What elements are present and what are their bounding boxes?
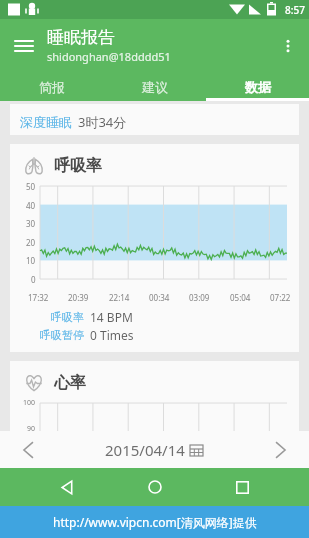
staticText: 数据 xyxy=(245,79,271,95)
staticText: 40 xyxy=(26,200,36,211)
staticText: 10 xyxy=(26,255,36,266)
staticText: 睡眠报告 xyxy=(47,27,115,48)
staticText: 100 xyxy=(23,398,36,408)
staticText: 建议 xyxy=(142,79,168,95)
staticText: 14 BPM xyxy=(90,309,133,325)
staticText: 22:14 xyxy=(109,292,130,303)
staticText: 07:22 xyxy=(270,292,291,303)
staticText: 简报 xyxy=(39,79,65,95)
button[interactable]: 深度睡眠 xyxy=(10,104,299,135)
staticText: 3时34分 xyxy=(78,113,127,131)
staticText: 90 xyxy=(27,424,36,434)
staticText: 2015/04/14 xyxy=(105,440,185,460)
button[interactable]: Next day xyxy=(263,433,297,467)
staticText: 呼吸率 xyxy=(54,156,102,176)
staticText: http://www.vipcn.com[清风网络]提供 xyxy=(53,514,257,530)
button[interactable]: Home xyxy=(135,468,175,506)
staticText: 17:32 xyxy=(28,292,49,303)
button[interactable]: 数据 xyxy=(206,72,309,101)
button[interactable]: Previous day xyxy=(12,433,46,467)
button[interactable]: 心率 xyxy=(10,361,299,467)
staticText: 0 xyxy=(31,274,36,285)
staticText: 深度睡眠 xyxy=(20,114,72,130)
staticText: shidonghan@18dddd51 xyxy=(47,49,171,64)
staticText: 20 xyxy=(26,237,36,248)
staticText: 05:04 xyxy=(230,292,251,303)
staticText: 03:09 xyxy=(189,292,210,303)
staticText: 30 xyxy=(26,218,36,229)
button[interactable]: Recent apps xyxy=(222,468,262,506)
button[interactable]: 建议 xyxy=(103,72,206,101)
staticText: 0 Times xyxy=(90,327,134,343)
staticText: 00:34 xyxy=(149,292,170,303)
button[interactable]: 简报 xyxy=(0,72,103,101)
staticText: 呼吸暂停 xyxy=(32,328,84,342)
button[interactable]: Open navigation menu xyxy=(6,28,42,64)
button[interactable]: 2015/04/14 xyxy=(105,440,204,460)
staticText: 20:39 xyxy=(68,292,89,303)
button[interactable]: More options xyxy=(271,29,305,63)
staticText: 呼吸率 xyxy=(32,310,84,324)
staticText: 心率 xyxy=(54,373,86,393)
button[interactable]: 呼吸率 xyxy=(10,144,299,352)
staticText: 50 xyxy=(26,181,36,192)
button[interactable]: Back xyxy=(47,468,87,506)
staticText: 8:57 xyxy=(285,3,305,17)
